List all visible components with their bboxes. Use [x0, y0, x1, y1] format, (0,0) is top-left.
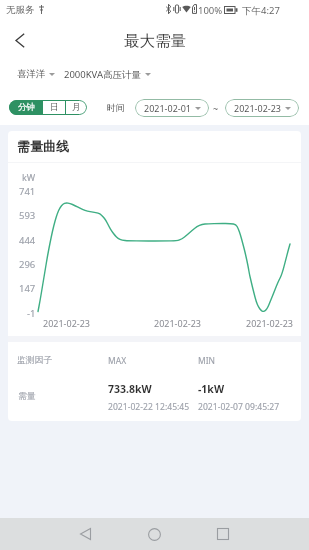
staticText: 月 [72, 102, 81, 113]
staticText: 100% [198, 4, 223, 17]
staticText: 2021-02-07 09:45:27 [198, 401, 280, 413]
button[interactable]: Back [5, 25, 35, 55]
button[interactable]: 2000KVA高压计量 [64, 66, 151, 82]
staticText: ~ [213, 102, 219, 114]
staticText: 最大需量 [124, 31, 186, 51]
button[interactable]: 2021-02-01 [135, 99, 209, 117]
staticText: 喜洋洋 [17, 68, 46, 80]
staticText: MAX [108, 355, 127, 367]
staticText: 时间 [107, 102, 125, 113]
staticText: 需量 [18, 391, 36, 402]
button[interactable]: Recent apps [207, 518, 239, 550]
button[interactable]: 2021-02-23 [225, 99, 299, 117]
staticText: -1kW [198, 382, 225, 396]
button[interactable]: 日 [43, 100, 65, 115]
staticText: 分钟 [18, 102, 35, 113]
staticText: 147 [19, 282, 36, 295]
button[interactable]: 月 [66, 100, 87, 115]
staticText: 733.8kW [108, 382, 152, 396]
staticText: 需量曲线 [17, 138, 69, 154]
staticText: 2000KVA高压计量 [64, 68, 142, 80]
button[interactable]: 喜洋洋 [17, 66, 55, 82]
staticText: 2021-02-23 [246, 317, 293, 329]
staticText: 2021-02-01 [144, 102, 191, 114]
staticText: 296 [19, 258, 36, 271]
staticText: kW [22, 171, 36, 183]
staticText: 2021-02-22 12:45:45 [108, 401, 190, 413]
staticText: 741 [19, 185, 36, 198]
staticText: 2021-02-23 [234, 102, 281, 114]
staticText: -1 [27, 307, 36, 320]
staticText: 2021-02-23 [154, 317, 201, 329]
staticText: 2021-02-23 [43, 317, 90, 329]
staticText: 日 [50, 102, 59, 113]
button[interactable]: Back [69, 518, 101, 550]
staticText: 无服务 [6, 4, 35, 16]
staticText: 444 [19, 234, 36, 247]
button[interactable]: 分钟 [9, 100, 43, 115]
staticText: 593 [19, 209, 36, 222]
button[interactable]: Home [138, 518, 170, 550]
staticText: 监测因子 [17, 355, 53, 366]
staticText: MIN [198, 355, 216, 367]
staticText: 下午4:27 [242, 4, 280, 17]
